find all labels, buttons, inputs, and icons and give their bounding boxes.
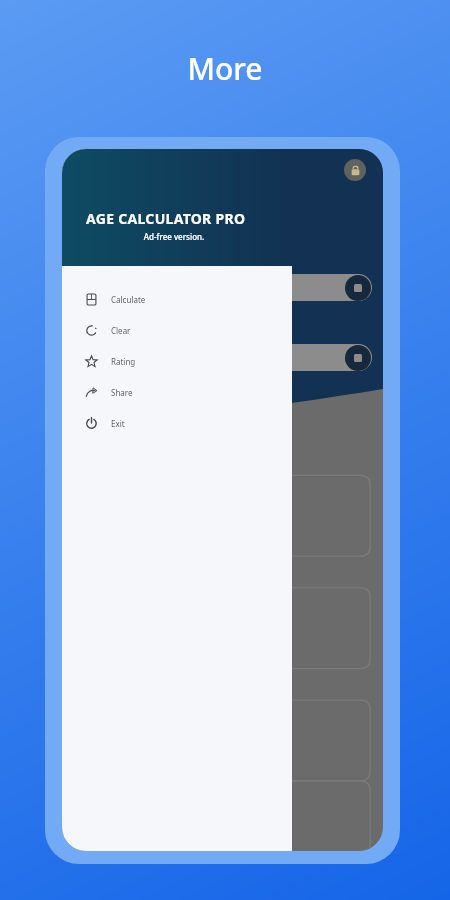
button[interactable]: Calculate xyxy=(62,284,292,315)
staticText: Calculate xyxy=(111,294,146,305)
button[interactable]: Exit xyxy=(62,408,292,439)
staticText: Clear xyxy=(111,325,131,336)
button[interactable]: Rating xyxy=(62,346,292,377)
staticText: More xyxy=(187,48,263,89)
button[interactable]: Thu xyxy=(212,274,372,301)
staticText: AGE CALCULATOR PRO xyxy=(86,209,246,228)
staticText: Rating xyxy=(111,356,136,367)
staticText: Ad-free version. xyxy=(86,231,262,242)
button[interactable]: Pro unlock xyxy=(344,159,366,181)
button[interactable]: Share xyxy=(62,377,292,408)
staticText: Exit xyxy=(111,418,125,429)
button[interactable] xyxy=(212,344,372,371)
staticText: Share xyxy=(111,387,133,398)
button[interactable]: Clear xyxy=(62,315,292,346)
